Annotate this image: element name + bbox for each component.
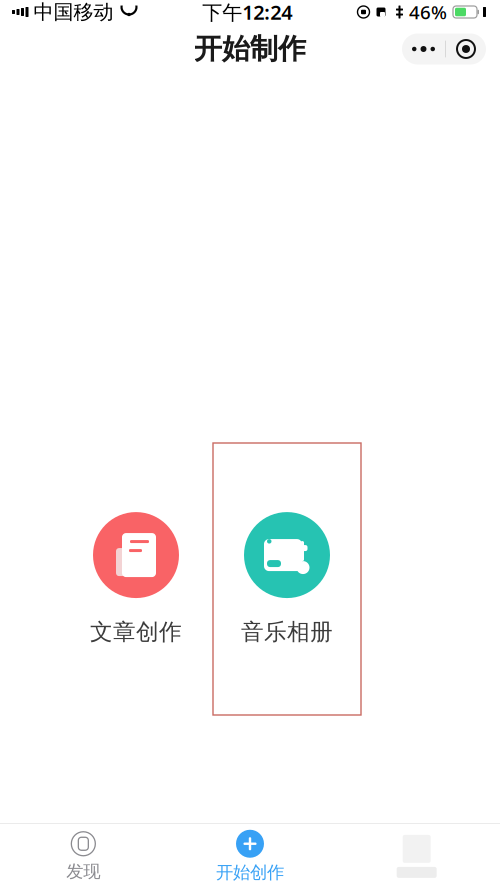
staticText: 中国移动 (33, 0, 113, 24)
button[interactable]: 关闭 (446, 34, 486, 64)
staticText: 46% (409, 0, 447, 24)
button[interactable]: 更多 (402, 34, 445, 64)
button[interactable]: 音乐相册 (213, 443, 361, 715)
staticText: 音乐相册 (241, 618, 333, 646)
staticText: 文章创作 (90, 618, 182, 646)
button[interactable]: 开始创作 (167, 826, 333, 886)
staticText: 开始创作 (216, 862, 284, 883)
button[interactable]: 文章创作 (62, 443, 210, 715)
button[interactable]: 发现 (0, 826, 167, 886)
staticText: 下午12:24 (202, 0, 292, 25)
button[interactable]: 我的 (333, 826, 500, 886)
staticText: 发现 (66, 861, 100, 882)
staticText: 开始制作 (194, 32, 306, 66)
